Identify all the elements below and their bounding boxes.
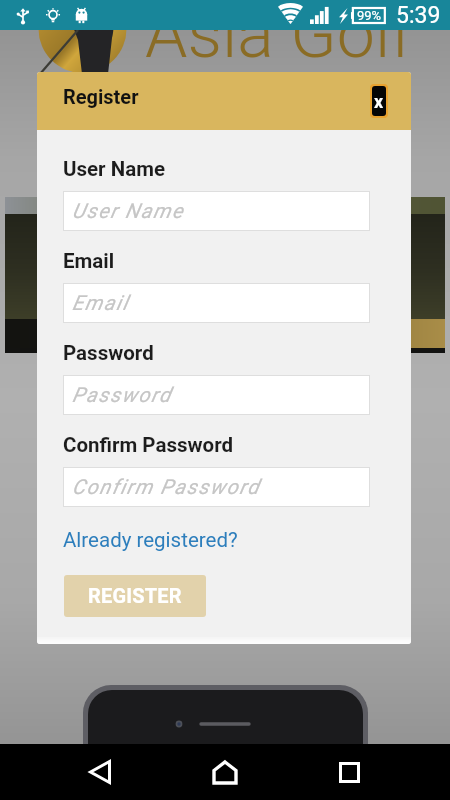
button[interactable]: Home [162, 744, 287, 800]
button[interactable]: REGISTER [64, 575, 206, 617]
staticText: Register [63, 85, 139, 108]
button[interactable]: Already registered? [63, 528, 238, 552]
staticText: Asia Golf [145, 0, 413, 74]
button[interactable]: Email [63, 283, 370, 323]
button[interactable]: Confirm Password [63, 467, 370, 507]
staticText: 99% [357, 8, 382, 23]
staticText: Confirm Password [63, 433, 234, 457]
staticText: User Name [72, 199, 184, 223]
button[interactable]: Password [63, 375, 370, 415]
staticText: Confirm Password [72, 475, 261, 499]
button[interactable]: Recents [287, 744, 412, 800]
staticText: x [374, 91, 384, 112]
staticText: User Name [63, 157, 166, 181]
button[interactable]: User Name [63, 191, 370, 231]
staticText: Email [63, 249, 115, 273]
button[interactable]: Close [372, 86, 386, 116]
staticText: Email [72, 291, 129, 315]
staticText: Password [63, 341, 154, 365]
staticText: 5:39 [396, 2, 441, 29]
staticText: Password [72, 383, 172, 407]
staticText: REGISTER [88, 584, 182, 607]
button[interactable]: Back [38, 744, 162, 800]
